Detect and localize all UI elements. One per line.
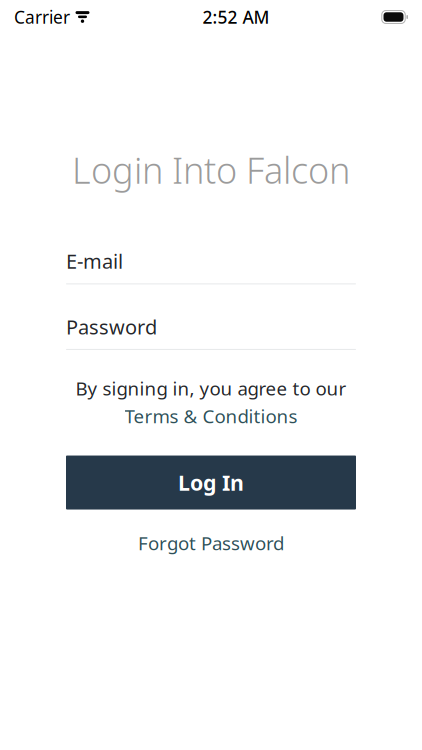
button[interactable]: Log In [66,455,356,509]
staticText: Carrier [14,5,70,28]
staticText: By signing in, you agree to our [75,376,346,401]
button[interactable]: Forgot Password [124,524,298,561]
staticText: E-mail [66,248,123,274]
staticText: Login Into Falcon [72,146,350,194]
staticText: Terms & Conditions [124,404,297,428]
staticText: Password [66,313,157,340]
button[interactable]: Terms & Conditions [124,404,297,428]
staticText: 2:52 AM [202,5,269,28]
staticText: Forgot Password [138,530,284,555]
staticText: Log In [178,468,244,497]
